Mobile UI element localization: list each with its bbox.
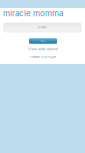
staticText: No posts. xyxy=(37,26,47,29)
staticText: View web version xyxy=(28,47,58,51)
button[interactable]: Home xyxy=(29,38,57,44)
staticText: miracle momma xyxy=(3,8,63,18)
button[interactable]: View web version xyxy=(28,47,58,51)
staticText: Blogger xyxy=(45,55,56,59)
button[interactable]: Blogger xyxy=(45,55,56,59)
staticText: Powered by xyxy=(30,55,44,59)
staticText: Home xyxy=(40,40,45,42)
